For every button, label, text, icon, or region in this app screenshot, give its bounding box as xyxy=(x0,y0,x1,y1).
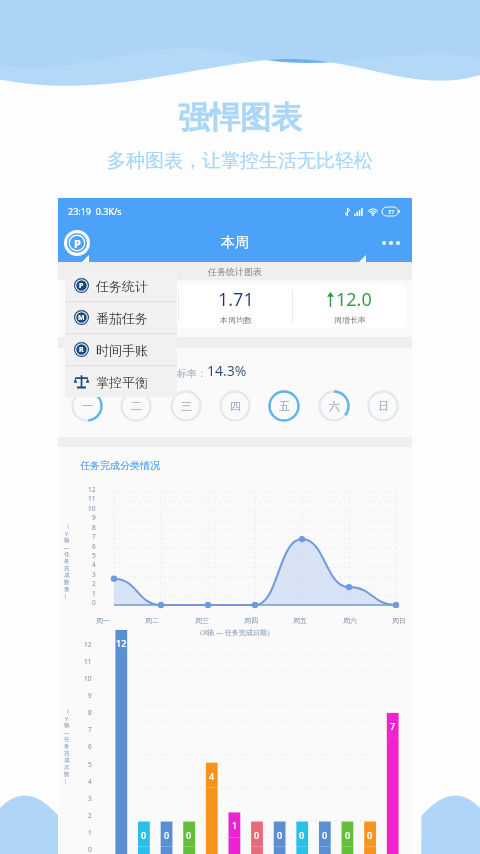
staticText: 周一 xyxy=(96,616,110,625)
staticText: 6 xyxy=(92,542,96,551)
staticText: 12 xyxy=(116,637,127,649)
staticText: 一 xyxy=(82,399,93,413)
staticText: 0 xyxy=(186,829,192,841)
staticText: 三 xyxy=(181,399,192,413)
staticText: 完 xyxy=(64,565,70,572)
button[interactable]: 日 xyxy=(366,389,400,423)
staticText: 9 xyxy=(88,691,92,700)
staticText: 6 xyxy=(88,742,92,751)
staticText: P xyxy=(74,236,81,251)
staticText: 日 xyxy=(378,399,389,413)
button[interactable]: 四 xyxy=(218,389,252,423)
staticText: 轴 xyxy=(64,722,70,729)
button[interactable]: P xyxy=(65,270,177,301)
staticText: 任务统计图表 xyxy=(208,266,262,277)
staticText: 0 xyxy=(141,829,147,841)
staticText: 14.3% xyxy=(207,361,247,380)
staticText: 0 xyxy=(322,829,328,841)
staticText: 0 xyxy=(299,829,305,841)
staticText: 1次 xyxy=(124,361,147,380)
staticText: 量 xyxy=(64,586,70,593)
staticText: 多种图表，让掌控生活无比轻松 xyxy=(107,149,373,173)
staticText: 本周 xyxy=(221,234,249,252)
staticText: 0 xyxy=(88,845,92,854)
staticText: 务 xyxy=(64,743,70,750)
staticText: P xyxy=(79,281,84,291)
staticText: 周六 xyxy=(343,616,357,625)
staticText: 8 xyxy=(92,523,96,532)
staticText: ） xyxy=(64,778,70,785)
staticText: 成 xyxy=(64,572,70,579)
staticText: 0 xyxy=(254,829,260,841)
button[interactable]: 六 xyxy=(317,389,351,423)
button[interactable]: 一 xyxy=(70,389,104,423)
staticText: 强悍图表 xyxy=(178,98,302,137)
staticText: 2 xyxy=(92,579,96,588)
staticText: 达标率： xyxy=(167,367,207,380)
staticText: R xyxy=(79,345,84,355)
button[interactable]: 五 xyxy=(267,389,301,423)
staticText: ） xyxy=(64,593,70,600)
button[interactable]: 二 xyxy=(119,389,153,423)
staticText: 3 xyxy=(92,570,96,579)
staticText: Y xyxy=(65,530,69,537)
staticText: 本周均数 xyxy=(220,315,252,325)
staticText: 务 xyxy=(64,558,70,565)
staticText: 任务统计 xyxy=(96,278,148,294)
staticText: M xyxy=(78,313,85,323)
staticText: 0 xyxy=(277,829,283,841)
staticText: 12.0 xyxy=(336,287,372,312)
staticText: 完 xyxy=(64,750,70,757)
staticText: 1 xyxy=(88,828,92,837)
staticText: 达标次数： xyxy=(74,367,124,380)
staticText: （ xyxy=(64,708,70,715)
staticText: 3 xyxy=(88,794,92,803)
staticText: 1 xyxy=(92,589,96,598)
staticText: 二 xyxy=(131,399,142,413)
staticText: 2 xyxy=(88,811,92,820)
staticText: 数 xyxy=(64,771,70,778)
button[interactable]: M xyxy=(65,302,177,333)
staticText: 四 xyxy=(230,399,241,413)
button[interactable]: 掌控平衡 xyxy=(65,366,177,397)
staticText: 10 xyxy=(84,674,92,683)
staticText: 掌控平衡 xyxy=(96,374,148,390)
staticText: Y xyxy=(65,715,69,722)
staticText: 成 xyxy=(64,757,70,764)
staticText: 0 xyxy=(164,829,170,841)
staticText: 轴 xyxy=(64,537,70,544)
staticText: 5 xyxy=(92,551,96,560)
staticText: 7 xyxy=(88,725,92,734)
staticText: 12 xyxy=(88,485,96,494)
staticText: 任务完成分类情况 xyxy=(80,459,160,472)
staticText: 4 xyxy=(88,777,92,786)
staticText: （X轴 — 任务完成日期） xyxy=(196,628,274,638)
staticText: 8 xyxy=(88,708,92,717)
staticText: 0 xyxy=(92,598,96,607)
staticText: 周日 xyxy=(392,616,406,625)
button[interactable]: More options xyxy=(382,241,400,245)
staticText: 番茄任务 xyxy=(96,310,148,326)
staticText: 任 xyxy=(64,736,70,743)
button[interactable]: 1.71 xyxy=(64,284,406,328)
staticText: 5 xyxy=(88,760,92,769)
staticText: — xyxy=(64,544,70,551)
staticText: 0 xyxy=(367,829,373,841)
staticText: 11 xyxy=(88,494,96,503)
staticText: 0 xyxy=(345,829,351,841)
button[interactable]: R xyxy=(65,334,177,365)
staticText: 数 xyxy=(64,579,70,586)
staticText: 11 xyxy=(84,657,92,666)
staticText: 周五 xyxy=(293,616,307,625)
staticText: 1.71 xyxy=(218,287,254,312)
button[interactable]: App logo xyxy=(64,230,90,256)
staticText: 任 xyxy=(64,551,70,558)
staticText: 周二 xyxy=(145,616,159,625)
staticText: 周四 xyxy=(244,616,258,625)
staticText: 7 xyxy=(390,720,396,732)
button[interactable]: 三 xyxy=(169,389,203,423)
staticText: 4 xyxy=(92,560,96,569)
staticText: 37 xyxy=(388,208,395,215)
staticText: 五 xyxy=(279,399,290,413)
staticText: 周三 xyxy=(195,616,209,625)
